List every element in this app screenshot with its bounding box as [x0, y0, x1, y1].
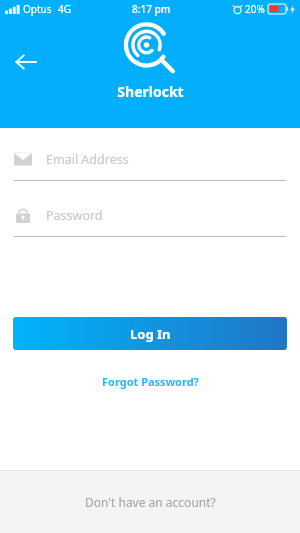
button[interactable]: Password [0, 200, 300, 237]
staticText: Sherlockt [117, 82, 184, 101]
button[interactable]: Don't have an account? [0, 470, 300, 533]
staticText: Email Address [46, 151, 129, 168]
button[interactable]: Back [8, 44, 44, 80]
staticText: Password [46, 207, 103, 224]
staticText: 8:17 pm [132, 2, 171, 16]
staticText: Forgot Password? [102, 374, 199, 389]
staticText: Don't have an account? [85, 494, 216, 510]
staticText: 4G [58, 2, 71, 16]
staticText: 20% [245, 2, 265, 16]
button[interactable]: Email Address [0, 144, 300, 181]
button[interactable]: Log In [13, 317, 287, 350]
button[interactable]: Forgot Password? [94, 370, 207, 393]
staticText: Optus [23, 2, 52, 16]
staticText: Log In [130, 325, 171, 343]
